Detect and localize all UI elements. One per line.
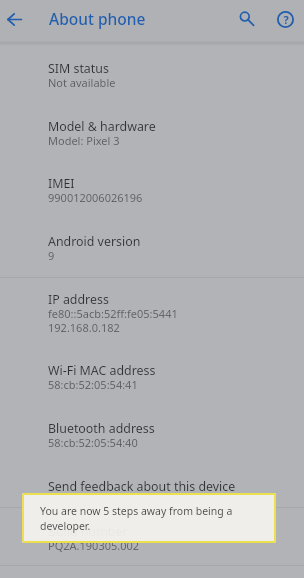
staticText: PQ2A.190305.002 xyxy=(48,539,140,553)
staticText: Build number xyxy=(48,523,128,539)
button[interactable]: Build number xyxy=(0,509,304,567)
staticText: ? xyxy=(283,12,289,27)
staticText: 192.168.0.182 xyxy=(48,321,120,335)
button[interactable]: Wi-Fi MAC address xyxy=(0,348,304,406)
button[interactable]: Search xyxy=(228,0,264,36)
button[interactable]: SIM status xyxy=(0,46,304,104)
staticText: Android version xyxy=(48,233,141,249)
staticText: You are now 5 steps away from being a de… xyxy=(40,503,262,533)
staticText: fe80::5acb:52ff:fe05:5441 xyxy=(48,307,178,321)
button[interactable]: Android version xyxy=(0,219,304,277)
button[interactable]: You are now 5 steps away from being a de… xyxy=(22,493,276,543)
staticText: 58:cb:52:05:54:40 xyxy=(48,436,138,450)
button[interactable]: IMEI xyxy=(0,161,304,219)
staticText: Bluetooth address xyxy=(48,420,155,436)
staticText: IP address xyxy=(48,291,109,307)
button[interactable]: IP address xyxy=(0,277,304,349)
staticText: SIM status xyxy=(48,60,109,76)
staticText: About phone xyxy=(49,8,146,29)
button[interactable]: Model & hardware xyxy=(0,104,304,162)
staticText: 58:cb:52:05:54:41 xyxy=(48,378,138,392)
staticText: Send feedback about this device xyxy=(48,478,236,494)
staticText: Not available xyxy=(48,76,116,90)
staticText: 9 xyxy=(48,249,55,263)
button[interactable]: Back xyxy=(0,0,36,38)
button[interactable]: Bluetooth address xyxy=(0,406,304,464)
staticText: Model: Pixel 3 xyxy=(48,134,120,148)
button[interactable]: Help xyxy=(267,1,303,37)
staticText: Model & hardware xyxy=(48,118,156,134)
button[interactable]: Send feedback about this device xyxy=(0,464,304,509)
staticText: IMEI xyxy=(48,175,75,191)
staticText: Wi-Fi MAC address xyxy=(48,362,156,378)
staticText: 990012006026196 xyxy=(48,191,143,205)
